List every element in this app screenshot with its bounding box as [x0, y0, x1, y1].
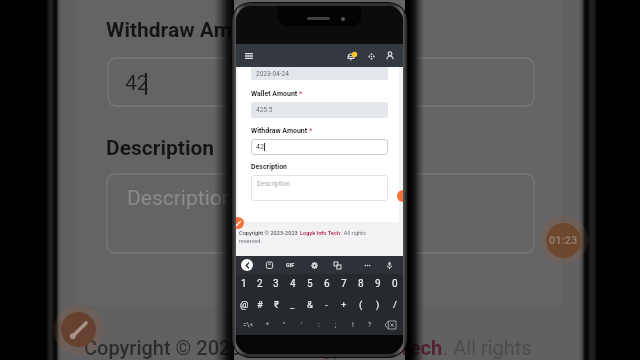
button[interactable]: ' [293, 315, 310, 335]
staticText: 425.5 [256, 106, 273, 114]
button[interactable]: Fullscreen [364, 49, 378, 63]
staticText: * [309, 127, 313, 135]
button[interactable]: " [276, 315, 293, 335]
staticText: Copyright © 2023-2023 [239, 230, 300, 237]
staticText: Wallet Amount [251, 90, 298, 98]
button[interactable]: ₹ [268, 294, 284, 315]
staticText: Description [127, 186, 234, 211]
button[interactable]: 8 [352, 274, 369, 294]
staticText: . All rights [341, 230, 366, 237]
staticText: Copyright © 2023-2023 [84, 336, 299, 359]
staticText: ! [352, 321, 354, 329]
button[interactable]: ) [369, 294, 386, 315]
staticText: reserved. [239, 238, 262, 245]
staticText: 42 [125, 71, 149, 96]
button[interactable]: Menu [242, 49, 256, 63]
button[interactable]: _ [284, 294, 301, 315]
button[interactable]: 0 [386, 274, 403, 294]
staticText: =\< [243, 321, 254, 329]
button[interactable]: GIF [284, 259, 296, 271]
button[interactable]: 2 [252, 274, 268, 294]
staticText: 9 [375, 278, 381, 290]
staticText: 5 [307, 278, 313, 290]
button[interactable]: translate [331, 259, 343, 271]
button[interactable]: Timer [546, 223, 581, 258]
staticText: ? [368, 321, 372, 329]
staticText: * [266, 321, 270, 329]
staticText: Logyk Info Tech [299, 336, 443, 359]
button[interactable]: 2023-04-24 [251, 67, 388, 80]
button[interactable] [378, 315, 403, 335]
button[interactable]: / [386, 294, 403, 315]
staticText: 1 [241, 278, 247, 290]
staticText: @ [240, 299, 249, 310]
button[interactable]: * [260, 315, 276, 335]
staticText: ) [376, 299, 380, 310]
staticText: 7 [341, 278, 347, 290]
staticText: " [283, 321, 286, 329]
staticText: Withdraw Amount [106, 18, 275, 43]
button[interactable]: Notifications [345, 49, 359, 63]
button[interactable]: @ [236, 294, 252, 315]
button[interactable]: & [301, 294, 318, 315]
staticText: 6 [324, 278, 330, 290]
button[interactable]: 1 [236, 274, 252, 294]
staticText: _ [290, 299, 295, 310]
staticText: 01:23 [549, 234, 578, 247]
button[interactable]: 7 [335, 274, 352, 294]
staticText: 2023-04-24 [256, 70, 289, 78]
staticText: ' [301, 321, 303, 329]
button[interactable]: 6 [318, 274, 335, 294]
button[interactable]: Scroll top [397, 190, 403, 202]
staticText: ( [359, 299, 363, 310]
button[interactable]: Profile [383, 49, 397, 63]
button[interactable]: 4 [284, 274, 301, 294]
button[interactable]: Edit [61, 312, 96, 347]
staticText: & [307, 299, 313, 310]
staticText: Description [257, 180, 290, 188]
staticText: # [257, 299, 263, 310]
staticText: Withdraw Amount [251, 127, 308, 135]
staticText: * [299, 90, 303, 98]
button[interactable]: 5 [301, 274, 318, 294]
staticText: GIF [286, 262, 295, 268]
button[interactable]: : [310, 315, 327, 335]
staticText: 42 [256, 143, 264, 151]
staticText: . All rights [443, 336, 532, 359]
button[interactable]: gear [308, 259, 320, 271]
button[interactable]: sticker [263, 259, 275, 271]
staticText: 4 [290, 278, 296, 290]
staticText: ; [335, 321, 337, 329]
button[interactable]: 42 [251, 139, 388, 155]
button[interactable]: ? [361, 315, 378, 335]
button[interactable]: 3 [268, 274, 284, 294]
staticText: 2 [257, 278, 263, 290]
staticText: - [325, 299, 328, 310]
button[interactable]: 425.5 [251, 102, 388, 118]
staticText: ₹ [274, 299, 279, 310]
staticText: 8 [358, 278, 364, 290]
button[interactable]: dots [361, 259, 373, 271]
staticText: 0 [392, 278, 398, 290]
staticText: Logyk Info Tech [300, 230, 341, 237]
button[interactable]: Edit theme [236, 217, 244, 229]
button[interactable]: Back [241, 259, 253, 271]
staticText: Description [106, 136, 215, 161]
staticText: + [341, 299, 347, 310]
staticText: 3 [273, 278, 279, 290]
staticText: / [393, 299, 397, 310]
button[interactable]: # [252, 294, 268, 315]
button[interactable]: ( [352, 294, 369, 315]
button[interactable]: + [335, 294, 352, 315]
button[interactable]: 9 [369, 274, 386, 294]
button[interactable]: ; [327, 315, 344, 335]
staticText: : [318, 321, 320, 329]
button[interactable]: =\< [236, 315, 260, 335]
button[interactable]: ! [344, 315, 361, 335]
staticText: Description [251, 163, 288, 171]
button[interactable]: - [318, 294, 335, 315]
button[interactable]: Description [251, 175, 388, 201]
button[interactable]: mic [383, 259, 395, 271]
